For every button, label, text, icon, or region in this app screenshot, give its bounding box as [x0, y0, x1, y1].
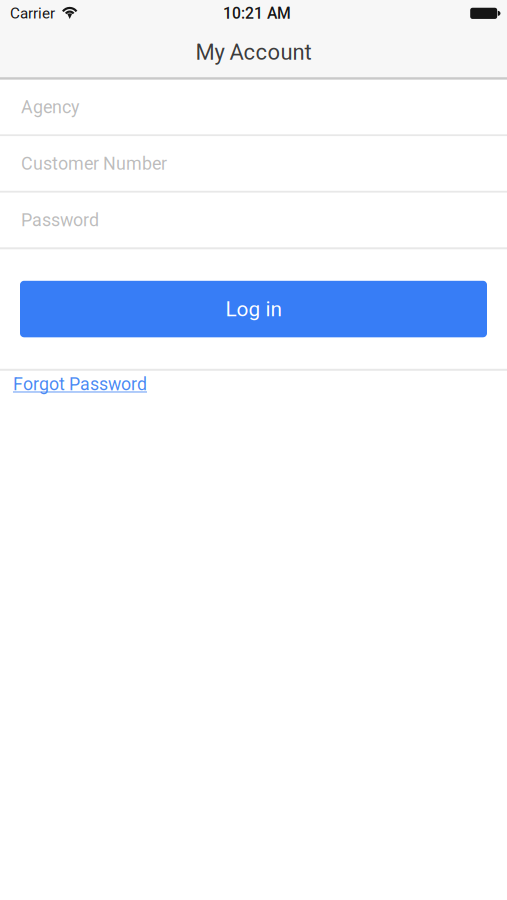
button[interactable]: Forgot Password [13, 374, 147, 395]
staticText: Forgot Password [13, 374, 147, 395]
staticText: Customer Number [21, 153, 167, 174]
staticText: Agency [21, 97, 79, 117]
staticText: My Account [195, 39, 311, 65]
staticText: 10:21 AM [223, 4, 291, 22]
staticText: Carrier [10, 4, 55, 22]
staticText: Log in [225, 297, 281, 321]
button[interactable]: Agency [0, 80, 507, 134]
staticText: Password [21, 210, 99, 230]
button[interactable]: Customer Number [0, 136, 507, 191]
button[interactable]: Password [0, 193, 507, 247]
button[interactable]: Log in [20, 281, 487, 337]
